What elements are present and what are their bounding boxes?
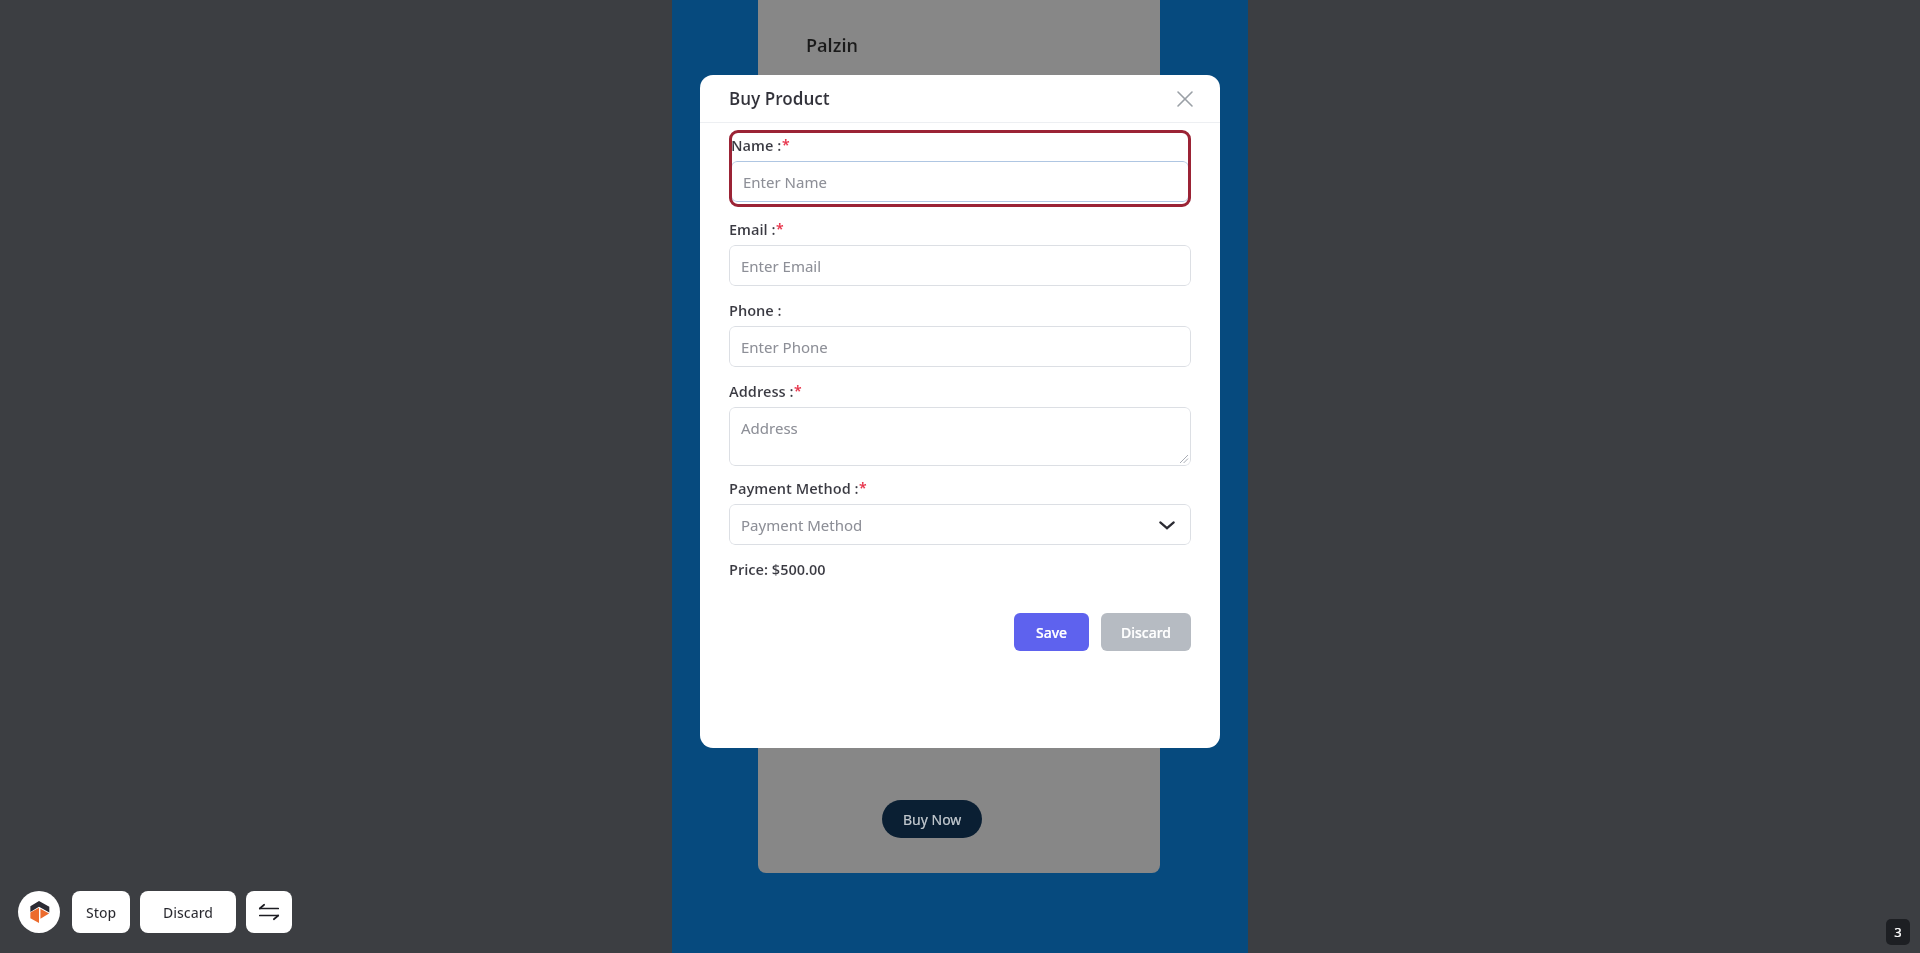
button[interactable]: Swap bbox=[246, 891, 292, 933]
staticText: Buy Product bbox=[729, 87, 830, 110]
button[interactable]: Enter Phone bbox=[729, 326, 1191, 367]
staticText: Phone : bbox=[729, 300, 782, 320]
staticText: Enter Phone bbox=[741, 337, 828, 357]
staticText: Save bbox=[1036, 623, 1068, 642]
staticText: Enter Email bbox=[741, 256, 822, 276]
button[interactable]: Stop bbox=[72, 891, 130, 933]
button[interactable]: Payment Method bbox=[729, 504, 1191, 545]
staticText: Address : bbox=[729, 381, 794, 401]
staticText: Discard bbox=[1121, 623, 1172, 642]
staticText: Stop bbox=[86, 903, 117, 922]
button[interactable]: Discard bbox=[140, 891, 236, 933]
staticText: Palzin bbox=[806, 33, 858, 58]
staticText: Name : bbox=[731, 135, 782, 155]
button[interactable]: Buy Now bbox=[882, 800, 982, 838]
button[interactable]: Enter Email bbox=[729, 245, 1191, 286]
staticText: * bbox=[859, 478, 867, 497]
staticText: Buy Now bbox=[903, 810, 962, 829]
staticText: Payment Method bbox=[741, 515, 863, 535]
staticText: Email : bbox=[729, 219, 776, 239]
button[interactable]: Close bbox=[1172, 86, 1198, 112]
staticText: * bbox=[794, 381, 802, 400]
staticText: * bbox=[776, 219, 784, 238]
staticText: 3 bbox=[1894, 923, 1902, 941]
button[interactable]: Discard bbox=[1101, 613, 1191, 651]
staticText: Enter Name bbox=[743, 172, 827, 192]
button[interactable]: Enter Name bbox=[731, 161, 1189, 202]
button[interactable]: Save bbox=[1014, 613, 1089, 651]
staticText: Discard bbox=[163, 903, 214, 922]
staticText: Price: $500.00 bbox=[729, 559, 826, 579]
button[interactable]: Address bbox=[729, 407, 1191, 466]
button[interactable]: App logo bbox=[18, 891, 60, 933]
staticText: Address bbox=[741, 418, 798, 438]
staticText: * bbox=[782, 135, 790, 154]
staticText: Payment Method : bbox=[729, 478, 859, 498]
